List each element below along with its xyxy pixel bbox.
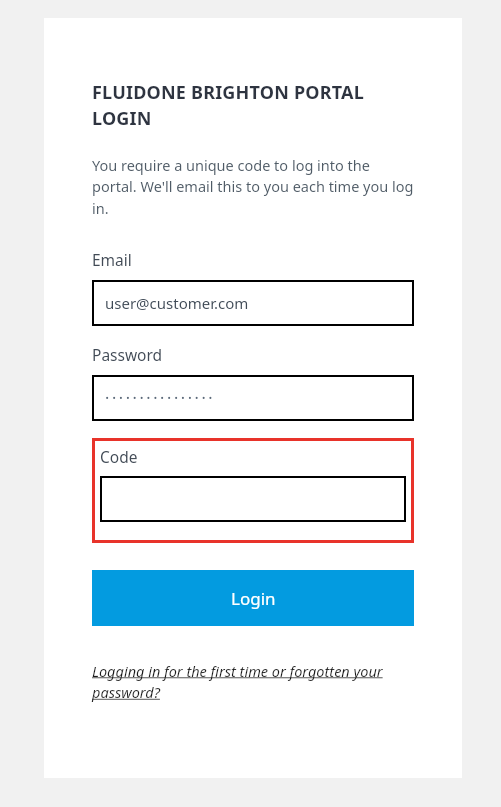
staticText: FLUIDONE BRIGHTON PORTAL LOGIN xyxy=(92,80,414,130)
staticText: Email xyxy=(92,249,132,270)
staticText: Password xyxy=(92,344,163,365)
staticText: You require a unique code to log into th… xyxy=(92,155,414,218)
staticText: user@customer.com xyxy=(105,293,249,313)
staticText: Login xyxy=(231,587,276,610)
button[interactable]: Logging in for the first time or forgott… xyxy=(92,661,414,702)
staticText: Code xyxy=(100,446,138,467)
button[interactable]: ················ xyxy=(92,375,414,421)
staticText: ················ xyxy=(105,387,216,409)
button[interactable] xyxy=(100,476,406,522)
staticText: Logging in for the first time or forgott… xyxy=(92,661,414,702)
button[interactable]: Login xyxy=(92,570,414,626)
button[interactable]: user@customer.com xyxy=(92,280,414,326)
